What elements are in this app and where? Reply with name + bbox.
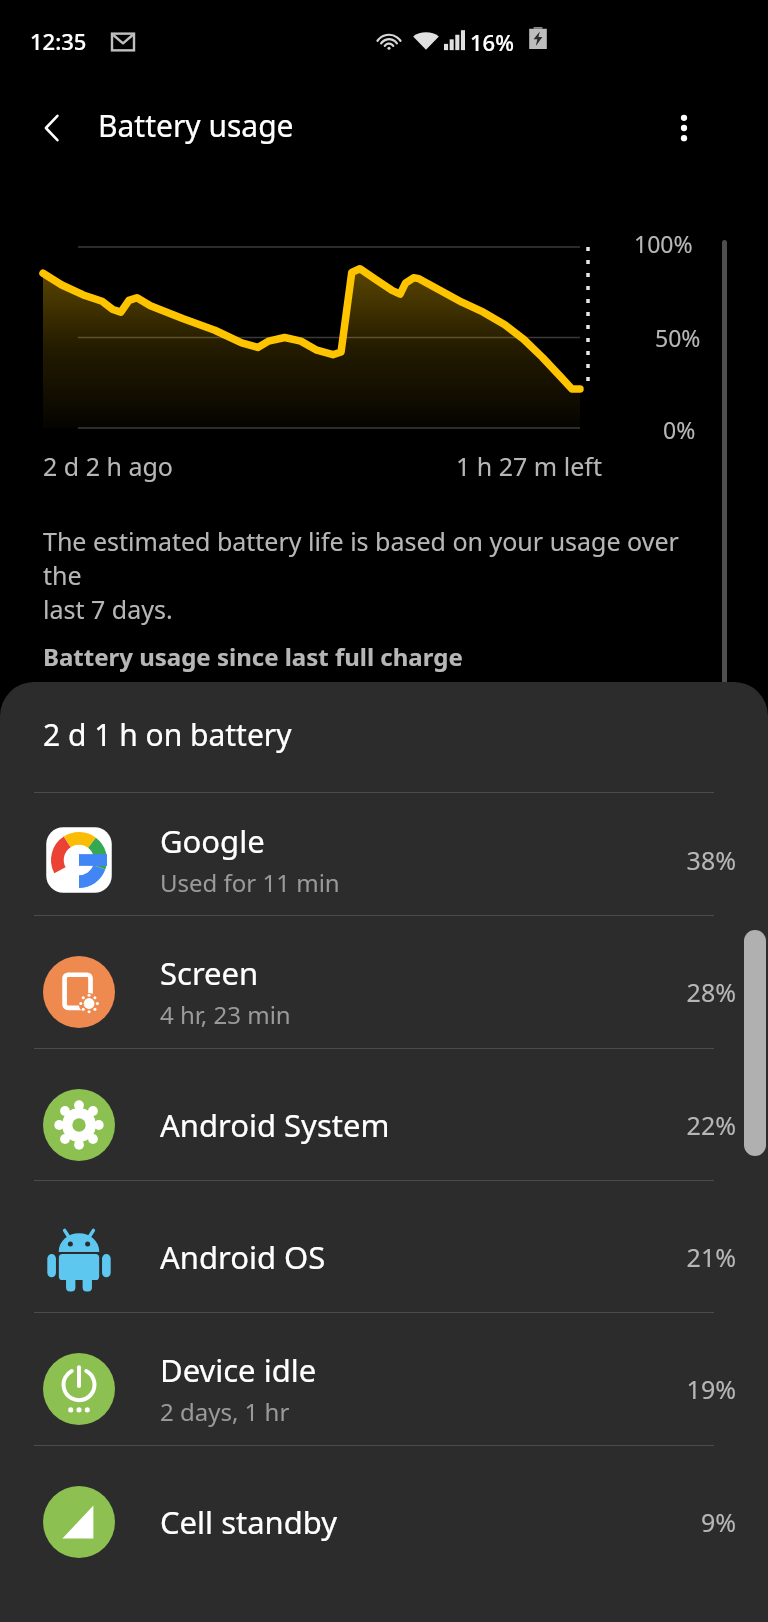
- staticText: Battery usage: [98, 105, 294, 146]
- staticText: 0%: [663, 414, 696, 445]
- staticText: 19%: [626, 1372, 736, 1406]
- staticText: Cell standby: [160, 1501, 338, 1543]
- staticText: 2 days, 1 hr: [160, 1395, 290, 1428]
- button[interactable]: Android System: [0, 1069, 768, 1180]
- staticText: 4 hr, 23 min: [160, 998, 291, 1031]
- button[interactable]: Screen: [0, 936, 768, 1047]
- staticText: Battery usage since last full charge: [43, 640, 463, 673]
- button[interactable]: More options: [654, 98, 714, 158]
- staticText: 50%: [655, 322, 701, 353]
- button[interactable]: Back: [22, 98, 82, 158]
- button[interactable]: Google: [0, 804, 768, 915]
- staticText: 12:35: [30, 26, 87, 56]
- staticText: 100%: [634, 228, 693, 259]
- staticText: 16%: [470, 27, 514, 57]
- staticText: Screen: [160, 952, 259, 994]
- staticText: 38%: [626, 843, 736, 877]
- button[interactable]: Device idle: [0, 1333, 768, 1444]
- staticText: The estimated battery life is based on y…: [43, 524, 703, 626]
- staticText: 28%: [626, 975, 736, 1009]
- button[interactable]: Cell standby: [0, 1466, 768, 1577]
- staticText: 2 d 1 h on battery: [43, 714, 292, 755]
- staticText: Device idle: [160, 1349, 317, 1391]
- staticText: Google: [160, 820, 265, 862]
- staticText: 22%: [626, 1108, 736, 1142]
- staticText: 2 d 2 h ago: [43, 449, 173, 483]
- staticText: 1 h 27 m left: [456, 449, 602, 483]
- staticText: Android System: [160, 1104, 390, 1146]
- staticText: 21%: [626, 1240, 736, 1274]
- staticText: Android OS: [160, 1236, 326, 1278]
- button[interactable]: Android OS: [0, 1201, 768, 1312]
- staticText: Used for 11 min: [160, 866, 340, 899]
- staticText: 9%: [626, 1505, 736, 1539]
